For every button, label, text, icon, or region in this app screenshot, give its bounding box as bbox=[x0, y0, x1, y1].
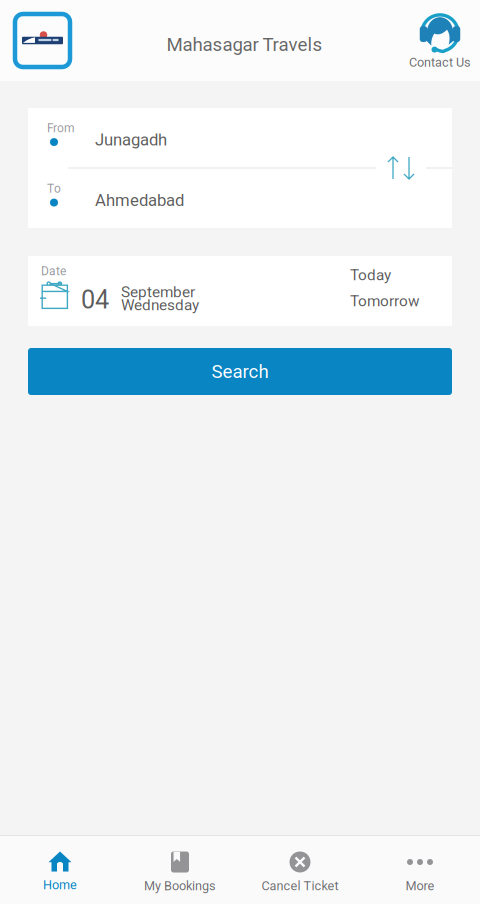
staticText: Date bbox=[41, 264, 66, 278]
staticText: Mahasagar Travels bbox=[166, 34, 322, 55]
staticText: From bbox=[47, 121, 75, 135]
staticText: Junagadh bbox=[95, 130, 167, 149]
staticText: 04 bbox=[81, 285, 109, 315]
staticText: Tomorrow bbox=[350, 292, 420, 310]
staticText: More bbox=[405, 878, 434, 893]
staticText: Contact Us bbox=[409, 55, 471, 70]
button[interactable]: Home bbox=[0, 836, 120, 903]
staticText: Wednesday bbox=[121, 296, 199, 314]
button[interactable]: More bbox=[360, 836, 480, 903]
staticText: To bbox=[47, 181, 61, 196]
button[interactable]: Contact Us bbox=[403, 11, 477, 70]
staticText: Ahmedabad bbox=[95, 190, 184, 210]
staticText: Home bbox=[43, 877, 77, 892]
staticText: Cancel Ticket bbox=[261, 878, 338, 893]
button[interactable]: Swap from and to bbox=[376, 154, 426, 182]
staticText: September bbox=[121, 283, 195, 301]
staticText: Search bbox=[211, 361, 268, 382]
button[interactable]: Mahasagar Travels bbox=[15, 14, 70, 67]
button[interactable]: Date bbox=[28, 256, 452, 326]
staticText: My Bookings bbox=[144, 878, 216, 893]
button[interactable]: My Bookings bbox=[120, 836, 240, 903]
button[interactable]: To bbox=[28, 168, 452, 228]
staticText: Today bbox=[350, 266, 391, 284]
button[interactable]: Cancel Ticket bbox=[240, 836, 360, 903]
button[interactable]: From bbox=[28, 108, 452, 167]
button[interactable]: Search bbox=[28, 348, 452, 395]
